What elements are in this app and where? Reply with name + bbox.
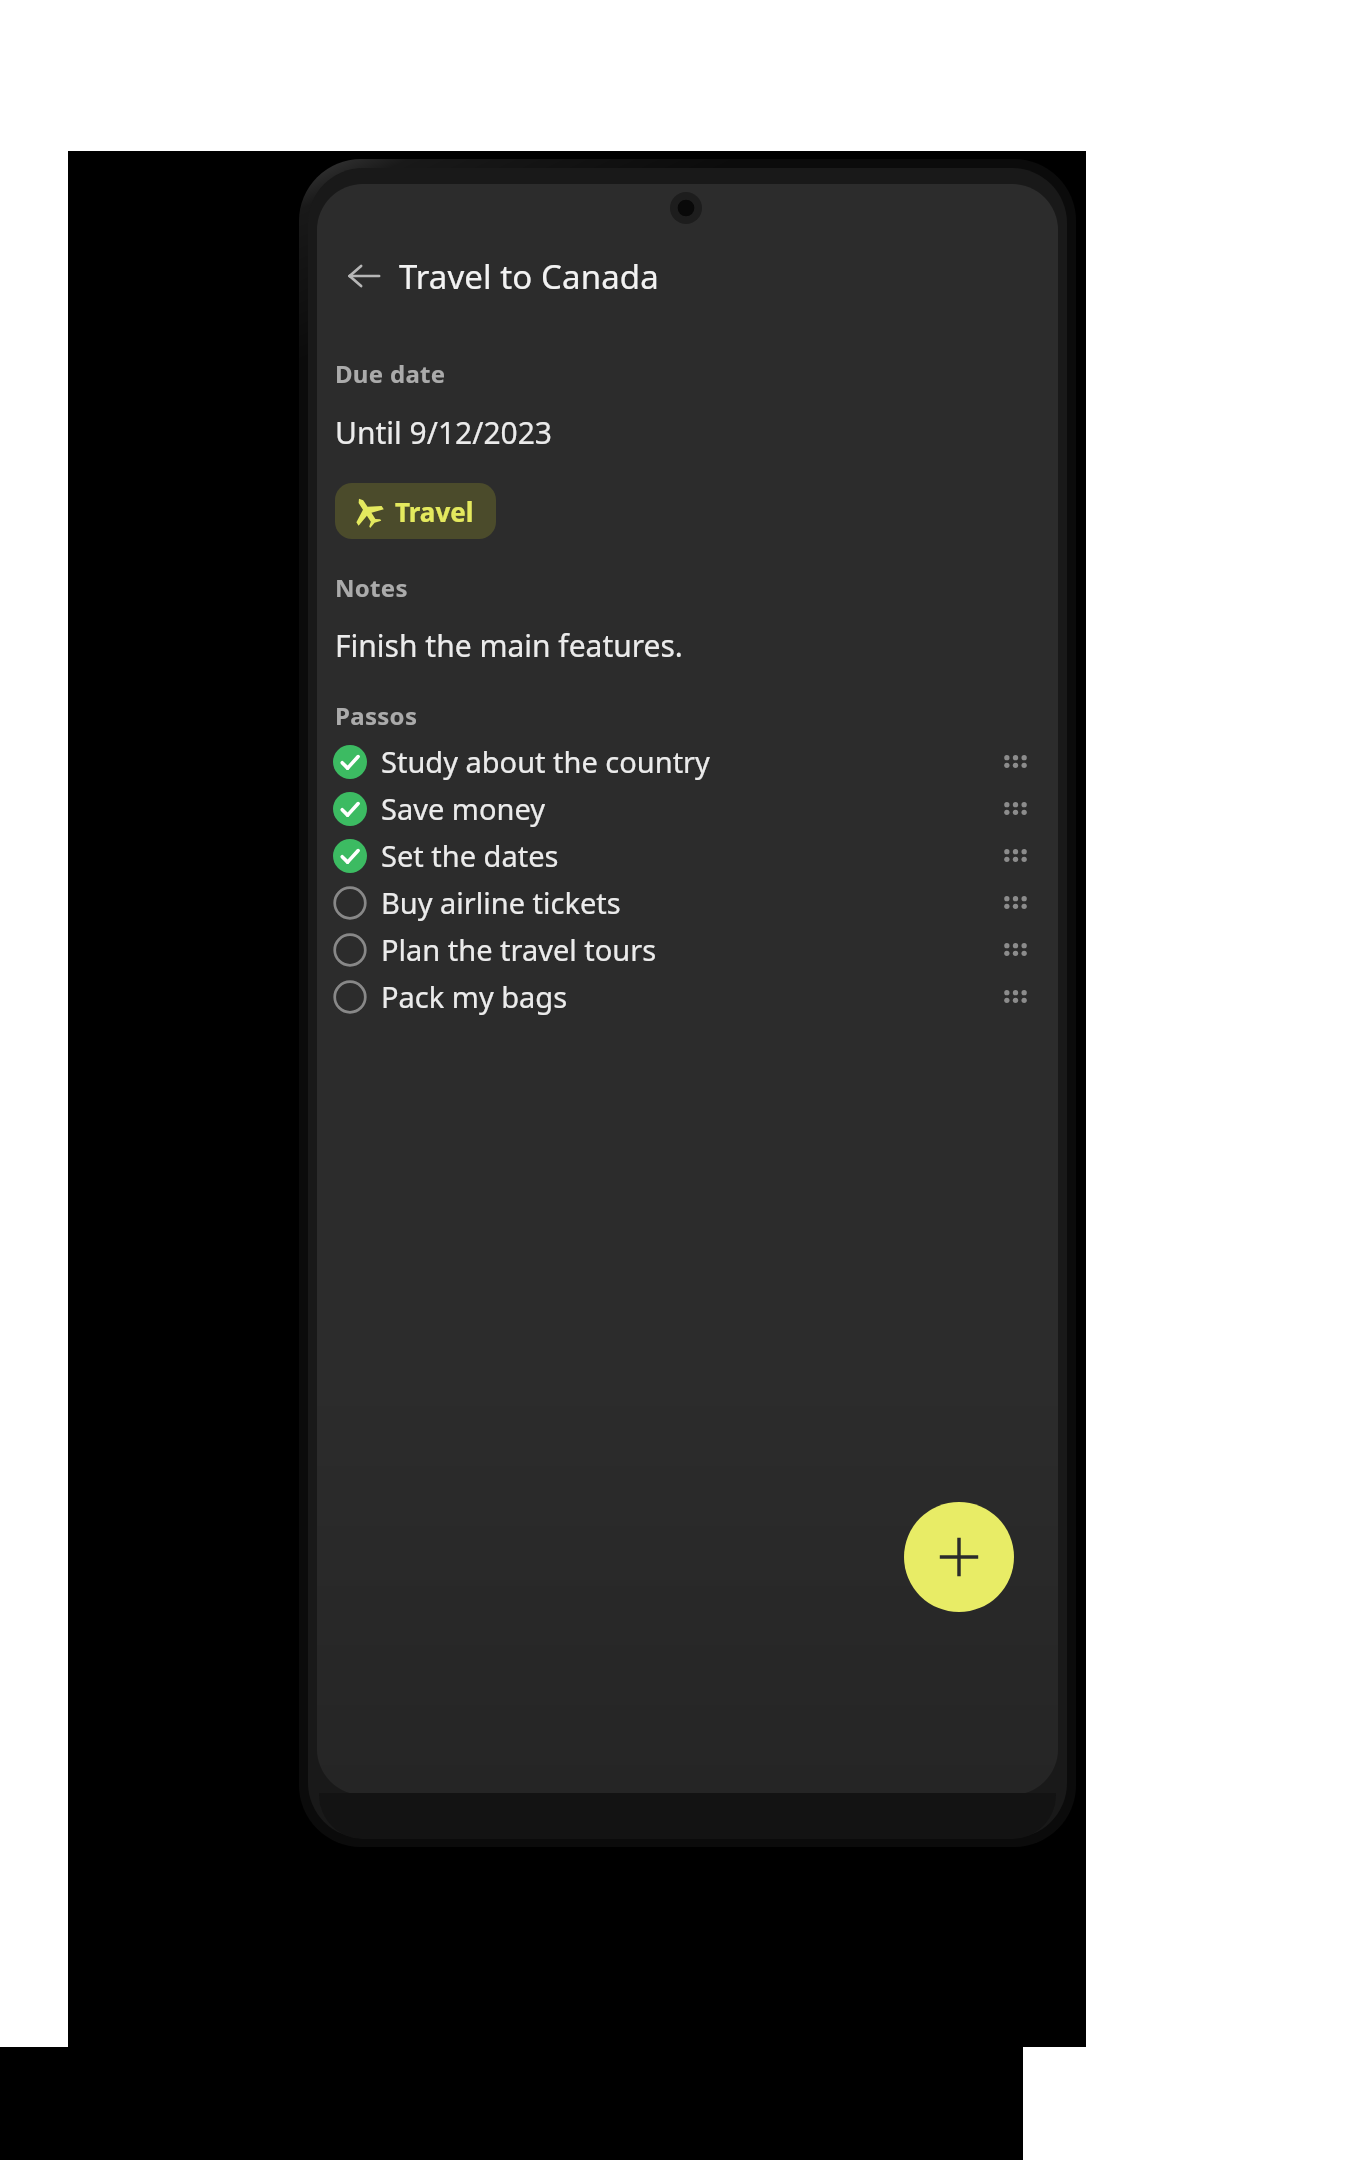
button[interactable]: Save money bbox=[317, 785, 1058, 832]
button[interactable]: Travel bbox=[335, 483, 496, 539]
button[interactable]: Reorder Pack my bags bbox=[988, 973, 1042, 1020]
button[interactable]: Reorder Set the dates bbox=[988, 832, 1042, 879]
button[interactable]: Reorder Study about the country bbox=[988, 738, 1042, 785]
staticText: Finish the main features. bbox=[335, 625, 683, 666]
button[interactable]: Reorder Plan the travel tours bbox=[988, 926, 1042, 973]
button[interactable]: Plan the travel tours bbox=[317, 926, 1058, 973]
staticText: Notes bbox=[335, 571, 408, 604]
staticText: Save money bbox=[381, 789, 545, 828]
button[interactable]: Reorder Save money bbox=[988, 785, 1042, 832]
staticText: Plan the travel tours bbox=[381, 930, 657, 969]
staticText: Due date bbox=[335, 357, 446, 390]
staticText: Study about the country bbox=[381, 742, 710, 781]
button[interactable]: Back bbox=[329, 241, 399, 311]
button[interactable]: Add step bbox=[904, 1502, 1014, 1612]
staticText: Set the dates bbox=[381, 836, 559, 875]
staticText: Passos bbox=[335, 699, 418, 732]
button[interactable]: Pack my bags bbox=[317, 973, 1058, 1020]
staticText: Travel bbox=[395, 494, 474, 529]
button[interactable]: Set the dates bbox=[317, 832, 1058, 879]
staticText: Travel to Canada bbox=[399, 254, 659, 299]
staticText: Buy airline tickets bbox=[381, 883, 621, 922]
staticText: Pack my bags bbox=[381, 977, 568, 1016]
button[interactable]: Reorder Buy airline tickets bbox=[988, 879, 1042, 926]
button[interactable]: Study about the country bbox=[317, 738, 1058, 785]
button[interactable]: Buy airline tickets bbox=[317, 879, 1058, 926]
staticText: Until 9/12/2023 bbox=[335, 412, 553, 453]
